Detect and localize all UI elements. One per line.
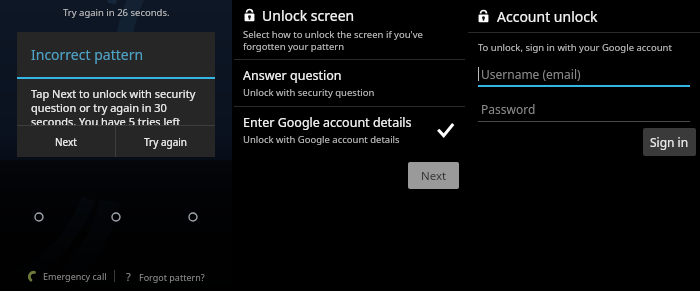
staticText: Next (55, 135, 77, 149)
staticText: Account unlock (497, 7, 598, 26)
staticText: Sign in (650, 134, 689, 150)
button[interactable]: Password (478, 96, 690, 122)
button[interactable]: Username (email) (478, 61, 690, 87)
staticText: Forgot pattern? (139, 271, 205, 283)
staticText: Select how to unlock the screen if you'v… (243, 28, 457, 53)
button[interactable]: Next (17, 126, 115, 157)
staticText: Try again (144, 135, 188, 149)
button[interactable]: Sign in (643, 128, 696, 156)
staticText: ? (126, 269, 131, 284)
staticText: Emergency call (43, 270, 107, 282)
button[interactable]: ? (122, 266, 209, 287)
staticText: Unlock screen (262, 6, 355, 25)
staticText: Password (481, 101, 536, 117)
staticText: Next (421, 168, 447, 184)
staticText: Incorrect pattern (31, 45, 144, 64)
button[interactable]: Next (408, 162, 459, 189)
staticText: Unlock with security question (243, 86, 375, 99)
button[interactable]: Answer question (234, 60, 465, 106)
staticText: Enter Google account details (243, 114, 412, 131)
staticText: Username (email) (481, 66, 581, 82)
staticText: Answer question (243, 67, 342, 84)
button[interactable]: Emergency call (24, 267, 111, 285)
button[interactable]: Try again (116, 126, 215, 157)
staticText: Unlock with Google account details (243, 133, 400, 146)
staticText: Try again in 26 seconds. (63, 6, 170, 19)
button[interactable]: Enter Google account details (234, 107, 465, 153)
staticText: To unlock, sign in with your Google acco… (478, 41, 672, 54)
staticText: Tap Next to unlock with security questio… (31, 86, 205, 125)
